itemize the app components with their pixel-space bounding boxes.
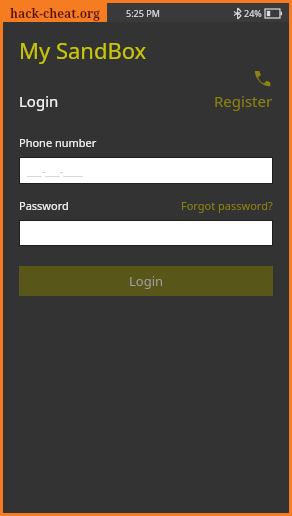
staticText: Phone number bbox=[19, 135, 97, 150]
staticText: 24% bbox=[244, 7, 262, 19]
button[interactable]: Login bbox=[19, 91, 59, 111]
button[interactable]: ___-___-____ bbox=[19, 157, 273, 184]
button[interactable] bbox=[19, 220, 273, 246]
staticText: Password bbox=[19, 198, 69, 213]
staticText: 5:25 PM bbox=[126, 7, 160, 19]
staticText: My SandBox bbox=[19, 35, 147, 65]
button[interactable]: Login bbox=[19, 266, 273, 296]
button[interactable]: Call support bbox=[249, 65, 275, 91]
staticText: Register bbox=[214, 91, 273, 111]
staticText: hack-cheat.org bbox=[10, 5, 101, 21]
staticText: Login bbox=[19, 91, 59, 111]
button[interactable]: Forgot password? bbox=[181, 198, 273, 213]
staticText: Forgot password? bbox=[181, 198, 273, 213]
staticText: Login bbox=[129, 272, 164, 290]
staticText: ___-___-____ bbox=[27, 163, 83, 178]
button[interactable]: Register bbox=[214, 91, 273, 111]
